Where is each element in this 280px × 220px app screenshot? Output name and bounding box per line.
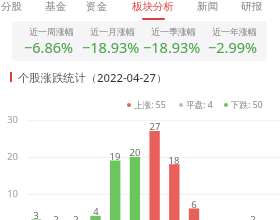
staticText: 分股 <box>1 0 22 13</box>
button[interactable]: 基金 <box>45 0 66 13</box>
staticText: 个股涨跌统计（2022-04-27） <box>18 70 168 83</box>
staticText: 近一周涨幅 <box>29 26 74 37</box>
staticText: −18.93% <box>82 37 140 57</box>
button[interactable]: 个股涨跌统计（2022-04-27） <box>10 70 168 83</box>
staticText: 2 <box>64 213 88 220</box>
staticText: 近一月涨幅 <box>90 26 135 37</box>
staticText: 30 <box>0 113 18 126</box>
staticText: 近一年涨幅 <box>212 26 257 37</box>
staticText: 2 <box>241 213 265 220</box>
button[interactable]: 近一年涨幅 <box>204 21 265 61</box>
staticText: 上涨: 55 <box>134 99 166 111</box>
button[interactable]: 上涨: 55 <box>127 99 166 111</box>
staticText: 4 <box>84 205 108 218</box>
staticText: −6.86% <box>24 37 74 57</box>
staticText: −18.93% <box>143 37 201 57</box>
staticText: 研报 <box>241 0 262 13</box>
staticText: −2.99% <box>208 37 258 57</box>
button[interactable]: 平盘: 4 <box>179 99 213 111</box>
button[interactable]: 板块分析 <box>132 0 174 20</box>
staticText: 基金 <box>45 0 66 13</box>
staticText: 19 <box>103 150 127 163</box>
button[interactable]: 近一季涨幅 <box>143 21 204 61</box>
staticText: 3 <box>24 209 48 220</box>
staticText: 20 <box>123 146 147 159</box>
staticText: 下跌: 50 <box>231 99 263 111</box>
button[interactable]: 分股 <box>1 0 22 13</box>
staticText: 6 <box>182 198 206 211</box>
staticText: 27 <box>143 120 167 133</box>
button[interactable]: 研报 <box>241 0 262 13</box>
staticText: 新闻 <box>197 0 218 13</box>
staticText: 近一季涨幅 <box>151 26 196 37</box>
staticText: 资金 <box>86 0 107 13</box>
staticText: 平盘: 4 <box>186 99 213 111</box>
staticText: 板块分析 <box>132 0 174 13</box>
staticText: 2 <box>44 213 68 220</box>
staticText: 10 <box>0 187 18 200</box>
button[interactable]: 新闻 <box>197 0 218 13</box>
button[interactable]: 资金 <box>86 0 107 13</box>
button[interactable]: 下跌: 50 <box>224 99 263 111</box>
staticText: 20 <box>0 150 18 163</box>
button[interactable]: 近一周涨幅 <box>20 21 82 61</box>
button[interactable]: 近一月涨幅 <box>82 21 143 61</box>
staticText: 18 <box>162 154 186 167</box>
